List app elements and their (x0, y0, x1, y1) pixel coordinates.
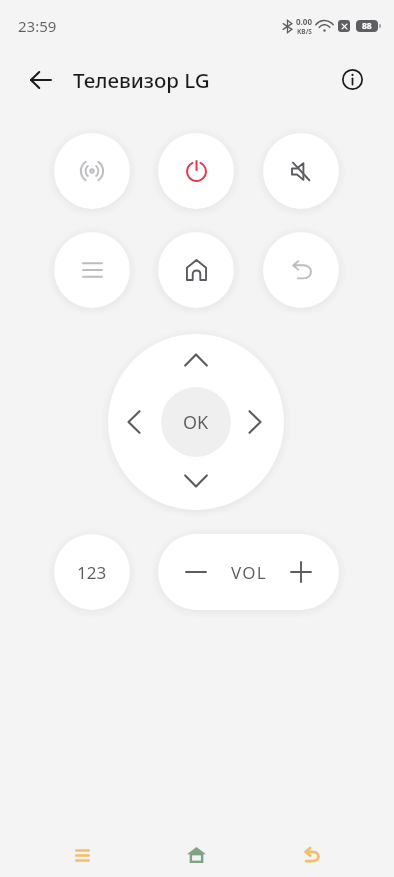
staticText: Телевизор LG (73, 66, 210, 94)
button[interactable]: Power (158, 133, 234, 209)
staticText: KB/S (297, 27, 312, 36)
button[interactable]: Down (174, 459, 218, 503)
button[interactable]: OK (161, 387, 231, 457)
staticText: OK (183, 410, 209, 435)
button[interactable]: Volume down (170, 546, 222, 598)
button[interactable]: Back (287, 831, 335, 877)
button[interactable]: Menu (54, 232, 130, 308)
button[interactable]: Info (336, 63, 368, 95)
staticText: 123 (77, 561, 107, 584)
button[interactable]: Right (233, 400, 277, 444)
staticText: VOL (231, 561, 267, 584)
button[interactable]: Home (158, 232, 234, 308)
button[interactable]: Up (174, 338, 218, 382)
button[interactable]: Volume up (275, 546, 327, 598)
button[interactable]: Back (22, 62, 59, 98)
button[interactable]: Source (54, 133, 130, 209)
button[interactable]: Numbers (54, 534, 130, 610)
button[interactable]: Mute (263, 133, 339, 209)
button[interactable]: Recents (58, 831, 106, 877)
button[interactable]: Left (112, 400, 156, 444)
button[interactable]: VOL (222, 546, 275, 598)
button[interactable]: Back (263, 232, 339, 308)
staticText: 88 (362, 20, 372, 32)
button[interactable]: Home (172, 831, 220, 877)
staticText: 0.00 (296, 16, 312, 27)
staticText: 23:59 (18, 16, 57, 36)
